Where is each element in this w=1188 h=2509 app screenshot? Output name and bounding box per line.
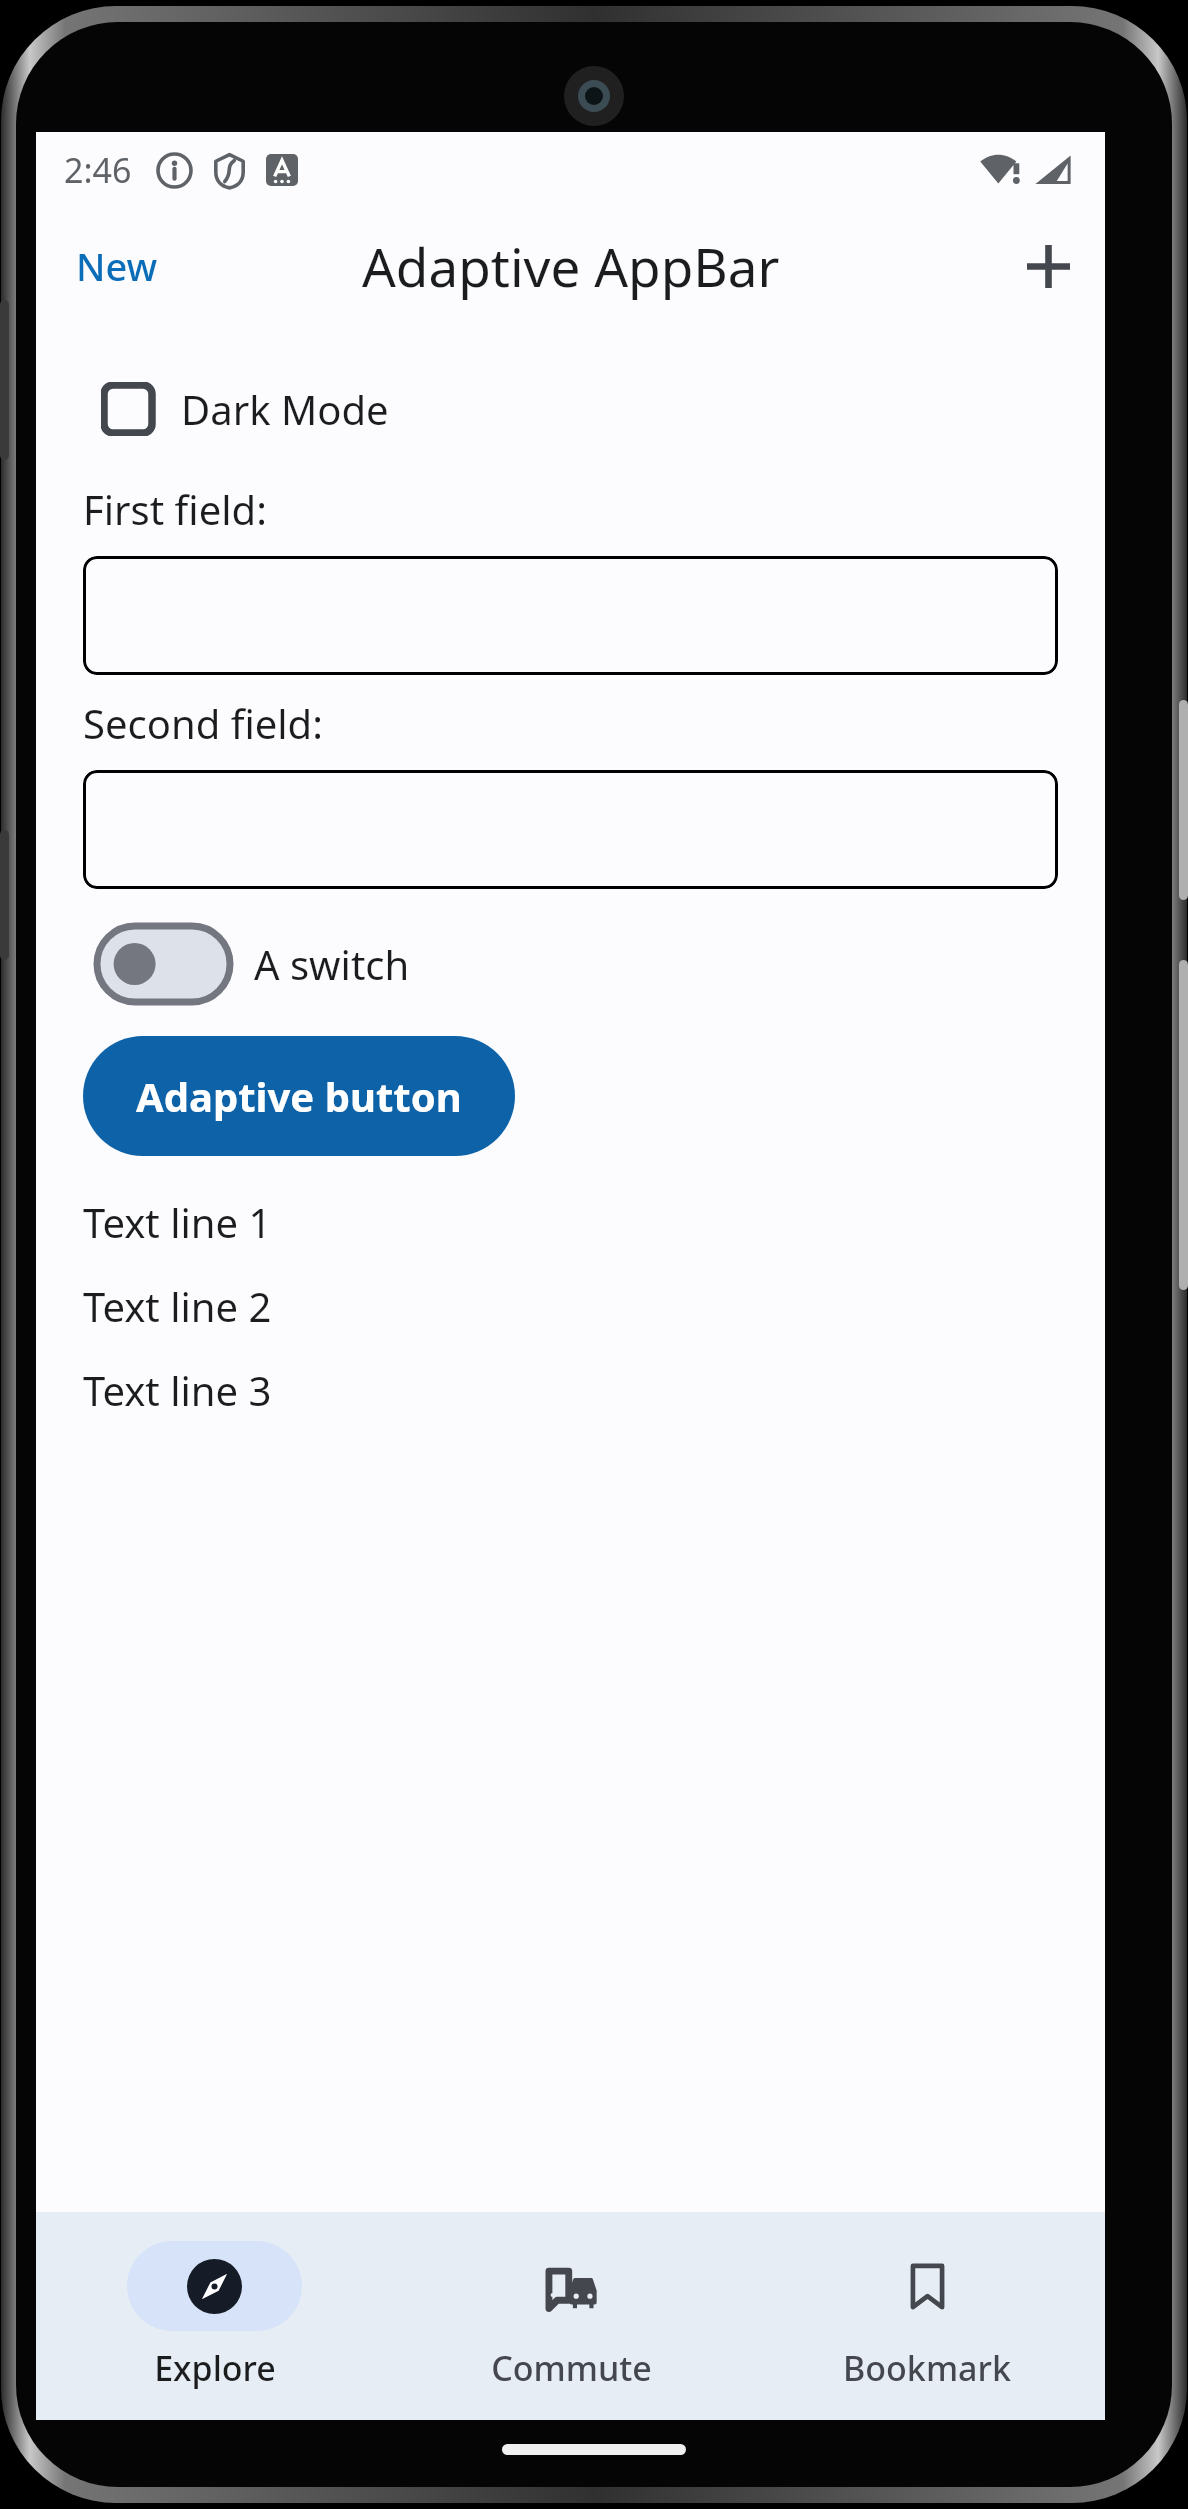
staticText: New xyxy=(76,240,158,292)
button[interactable]: Adaptive button xyxy=(83,1036,515,1156)
staticText: Second field: xyxy=(83,696,323,750)
button[interactable]: Explore xyxy=(36,2212,393,2420)
staticText: Bookmark xyxy=(843,2345,1011,2391)
button[interactable] xyxy=(83,770,1058,889)
staticText: 2:46 xyxy=(64,147,132,193)
staticText: Explore xyxy=(154,2345,276,2391)
button[interactable]: Bookmark xyxy=(749,2212,1105,2420)
button[interactable]: Dark Mode xyxy=(101,382,389,436)
button[interactable]: New xyxy=(62,230,172,302)
staticText: Commute xyxy=(491,2345,652,2391)
staticText: Text line 3 xyxy=(83,1363,272,1417)
button[interactable]: Add xyxy=(1005,223,1091,309)
staticText: First field: xyxy=(83,482,267,536)
button[interactable]: Commute xyxy=(393,2212,749,2420)
staticText: Text line 2 xyxy=(83,1279,272,1333)
staticText: A switch xyxy=(254,937,410,991)
button[interactable]: A switch xyxy=(93,922,410,1006)
button[interactable] xyxy=(83,556,1058,675)
staticText: Adaptive AppBar xyxy=(362,230,780,302)
staticText: Dark Mode xyxy=(181,382,389,436)
staticText: Adaptive button xyxy=(136,1069,462,1123)
staticText: Text line 1 xyxy=(83,1195,272,1249)
